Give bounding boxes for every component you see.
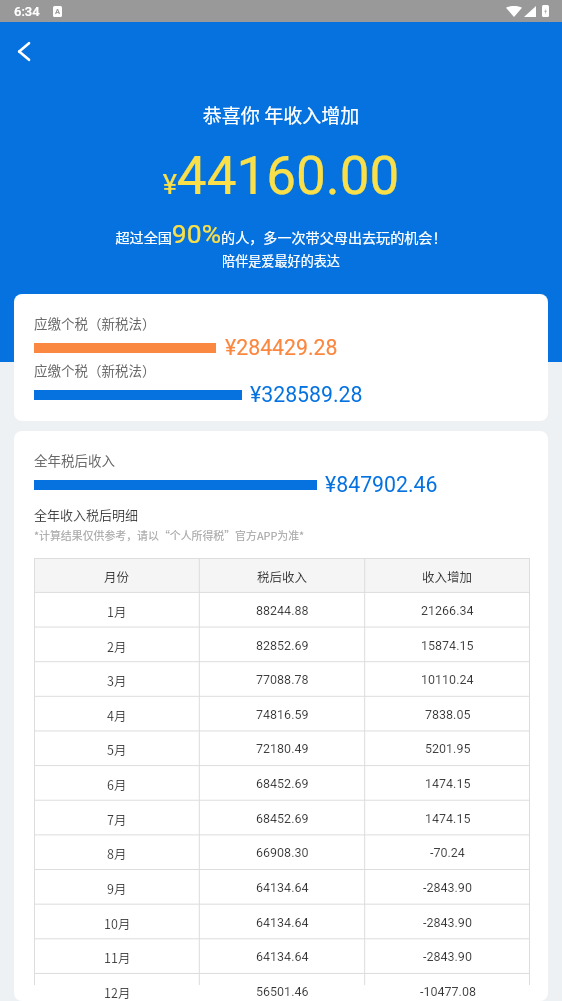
staticText: ¥44160.00 <box>0 145 562 207</box>
staticText: 11月 <box>104 948 131 966</box>
staticText: 15874.15 <box>421 638 474 653</box>
staticText: 68452.69 <box>256 811 309 826</box>
staticText: -2843.90 <box>423 949 472 964</box>
staticText: 68452.69 <box>256 776 309 791</box>
staticText: 64134.64 <box>256 949 309 964</box>
staticText: -10477.08 <box>420 984 476 999</box>
staticText: 10110.24 <box>421 672 474 687</box>
button[interactable]: Back <box>2 30 44 72</box>
staticText: A <box>55 7 61 16</box>
staticText: 7月 <box>107 810 127 828</box>
staticText: 1474.15 <box>425 811 471 826</box>
staticText: *计算结果仅供参考，请以“个人所得税”官方APP为准* <box>34 527 305 543</box>
staticText: 全年税后收入 <box>34 450 115 470</box>
staticText: 陪伴是爱最好的表达 <box>0 251 562 270</box>
staticText: 7838.05 <box>425 707 471 722</box>
staticText: ¥284429.28 <box>225 335 338 360</box>
staticText: 超过全国90%的人，多一次带父母出去玩的机会！ <box>0 218 562 249</box>
staticText: 月份 <box>104 567 130 585</box>
staticText: 12月 <box>104 983 131 1001</box>
staticText: 88244.88 <box>256 603 309 618</box>
staticText: 应缴个税（新税法） <box>34 360 156 380</box>
staticText: 应缴个税（新税法） <box>34 313 156 333</box>
staticText: 5201.95 <box>425 741 471 756</box>
staticText: 1474.15 <box>425 776 471 791</box>
staticText: -70.24 <box>430 845 465 860</box>
staticText: -2843.90 <box>423 880 472 895</box>
staticText: 6月 <box>107 775 127 793</box>
staticText: 恭喜你 年收入增加 <box>0 101 562 129</box>
staticText: ¥847902.46 <box>325 472 438 497</box>
staticText: 10月 <box>104 914 131 932</box>
staticText: 56501.46 <box>256 984 309 999</box>
staticText: 21266.34 <box>421 603 474 618</box>
staticText: 72180.49 <box>256 741 309 756</box>
staticText: 2月 <box>107 637 127 655</box>
staticText: 收入增加 <box>422 567 473 585</box>
staticText: 66908.30 <box>256 845 309 860</box>
staticText: ¥328589.28 <box>250 382 363 407</box>
staticText: 税后收入 <box>257 567 308 585</box>
staticText: 6:34 <box>14 4 40 19</box>
staticText: 77088.78 <box>256 672 309 687</box>
staticText: 3月 <box>107 671 127 689</box>
staticText: 全年收入税后明细 <box>34 505 139 524</box>
staticText: 74816.59 <box>256 707 309 722</box>
staticText: -2843.90 <box>423 915 472 930</box>
staticText: 4月 <box>107 706 127 724</box>
staticText: 82852.69 <box>256 638 309 653</box>
staticText: 64134.64 <box>256 915 309 930</box>
staticText: 9月 <box>107 879 127 897</box>
staticText: 64134.64 <box>256 880 309 895</box>
staticText: 1月 <box>107 602 127 620</box>
staticText: 5月 <box>107 740 127 758</box>
staticText: 8月 <box>107 844 127 862</box>
